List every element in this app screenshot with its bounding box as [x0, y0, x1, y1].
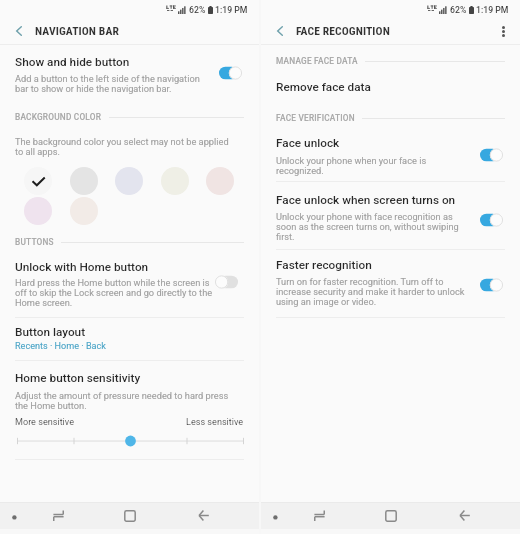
button[interactable]: Remove face data — [261, 76, 520, 102]
staticText: Adjust the amount of pressure needed to … — [15, 390, 229, 411]
button[interactable]: Background colour option 2 — [70, 167, 98, 195]
staticText: 62% — [450, 5, 467, 15]
button[interactable]: Show and hide button — [219, 65, 245, 81]
staticText: BUTTONS — [15, 237, 54, 247]
staticText: 62% — [189, 5, 206, 15]
button[interactable]: Face unlock — [480, 147, 506, 163]
staticText: NAVIGATION BAR — [35, 24, 119, 38]
button[interactable]: Back — [189, 502, 217, 529]
button[interactable]: Navigate up — [6, 18, 32, 44]
staticText: Turn on for faster recognition. Turn off… — [276, 276, 465, 307]
staticText: FACE VERIFICATION — [276, 113, 355, 123]
button[interactable]: Home — [116, 502, 144, 529]
staticText: Unlock your phone with face recognition … — [276, 211, 459, 242]
button[interactable]: Background colour option 3 — [115, 167, 143, 195]
staticText: Add a button to the left side of the nav… — [15, 73, 200, 94]
staticText: Recents · Home · Back — [15, 341, 106, 352]
staticText: MANAGE FACE DATA — [276, 56, 358, 66]
button[interactable]: More options — [491, 19, 515, 43]
staticText: 1:19 PM — [215, 5, 248, 15]
staticText: Less sensitive — [186, 417, 244, 428]
button[interactable]: Background colour option 7 — [70, 197, 98, 225]
button[interactable]: Back — [450, 502, 478, 529]
staticText: Remove face data — [276, 80, 371, 94]
staticText: Show and hide button — [15, 55, 130, 69]
staticText: Unlock with Home button — [15, 260, 149, 274]
staticText: Unlock your phone when your face is reco… — [276, 155, 427, 176]
button[interactable]: Faster recognition — [480, 277, 506, 293]
button[interactable]: Unlock with Home button — [219, 274, 245, 290]
staticText: Face unlock — [276, 136, 340, 150]
button[interactable]: Face unlock when screen turns on — [480, 212, 506, 228]
button[interactable]: Recent apps — [305, 502, 333, 529]
staticText: Hard press the Home button while the scr… — [15, 277, 213, 308]
staticText: 1:19 PM — [476, 5, 509, 15]
button[interactable]: Home button sensitivity slider — [0, 434, 259, 448]
staticText: FACE RECOGNITION — [296, 24, 390, 38]
staticText: Faster recognition — [276, 258, 372, 272]
button[interactable]: Background colour option 1 — [24, 167, 52, 195]
button[interactable]: Background colour option 5 — [206, 167, 234, 195]
button[interactable]: Background colour option 6 — [24, 197, 52, 225]
button[interactable]: Navigate up — [267, 18, 293, 44]
staticText: BACKGROUND COLOR — [15, 112, 102, 122]
staticText: Home button sensitivity — [15, 371, 141, 385]
staticText: Face unlock when screen turns on — [276, 193, 456, 207]
staticText: Button layout — [15, 325, 86, 339]
button[interactable]: Recent apps — [44, 502, 72, 529]
staticText: More sensitive — [15, 417, 74, 428]
button[interactable]: Background colour option 4 — [161, 167, 189, 195]
button[interactable]: Button layout — [0, 318, 259, 360]
staticText: The background color you select may not … — [15, 136, 229, 157]
button[interactable]: Home — [377, 502, 405, 529]
